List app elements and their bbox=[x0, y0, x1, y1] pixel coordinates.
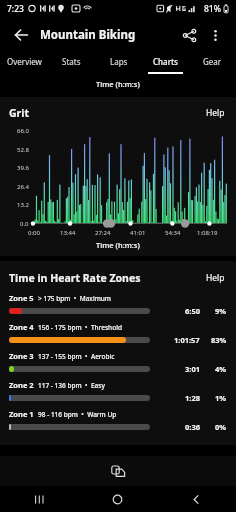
staticText: Zone 5 bbox=[9, 293, 34, 303]
button[interactable]: Share activity bbox=[105, 458, 131, 484]
staticText: 1% bbox=[215, 393, 227, 403]
staticText: Time (h:m:s) bbox=[96, 79, 140, 89]
button[interactable]: Help bbox=[204, 105, 227, 121]
staticText: 0.0 bbox=[20, 220, 29, 227]
button[interactable]: Zone 5 bbox=[9, 293, 227, 322]
staticText: 0:00 bbox=[28, 229, 40, 237]
button[interactable]: Recent apps bbox=[0, 486, 78, 512]
staticText: Charts bbox=[153, 56, 179, 67]
button[interactable]: Zone 1 bbox=[9, 409, 227, 438]
staticText: 0% bbox=[215, 422, 227, 432]
button[interactable]: Overview bbox=[0, 52, 48, 74]
button[interactable]: Back bbox=[8, 22, 34, 48]
staticText: 1:28 bbox=[185, 393, 200, 403]
staticText: Time in Heart Rate Zones bbox=[9, 271, 141, 285]
staticText: 137 - 155 bpm • Aerobic bbox=[38, 352, 115, 361]
staticText: 1:01:57 bbox=[174, 335, 200, 345]
staticText: 41:01 bbox=[130, 229, 146, 237]
staticText: 9% bbox=[215, 306, 227, 316]
button[interactable]: Zone 2 bbox=[9, 380, 227, 409]
staticText: 26.4 bbox=[17, 183, 29, 190]
staticText: 81% bbox=[204, 3, 221, 15]
staticText: 4% bbox=[215, 364, 227, 374]
staticText: Time (h:m:s) bbox=[96, 240, 140, 250]
staticText: 39.6 bbox=[17, 164, 29, 171]
button[interactable]: Gear bbox=[189, 52, 236, 74]
button[interactable]: Home bbox=[78, 486, 157, 512]
staticText: 1:08:19 bbox=[197, 229, 218, 237]
staticText: Zone 1 bbox=[9, 409, 34, 419]
staticText: 54:34 bbox=[165, 229, 181, 237]
button[interactable]: Zone 3 bbox=[9, 351, 227, 380]
staticText: 27:24 bbox=[95, 229, 111, 237]
button[interactable]: Laps bbox=[95, 52, 142, 74]
staticText: 98 - 116 bpm • Warm Up bbox=[38, 410, 117, 419]
staticText: 52.8 bbox=[17, 146, 29, 153]
staticText: 13.2 bbox=[17, 201, 29, 208]
staticText: Help bbox=[206, 107, 225, 119]
staticText: Zone 3 bbox=[9, 351, 34, 361]
staticText: Gear bbox=[203, 56, 222, 67]
staticText: Zone 4 bbox=[9, 322, 34, 332]
staticText: > 175 bpm • Maximum bbox=[38, 294, 112, 303]
staticText: Grit bbox=[9, 106, 29, 120]
button[interactable]: Back bbox=[157, 486, 236, 512]
button[interactable]: Share bbox=[176, 22, 202, 48]
button[interactable]: Charts bbox=[142, 52, 189, 74]
staticText: 6:50 bbox=[185, 306, 200, 316]
staticText: 3:01 bbox=[185, 364, 200, 374]
staticText: Laps bbox=[110, 56, 128, 67]
staticText: Zone 2 bbox=[9, 380, 34, 390]
button[interactable]: Stats bbox=[48, 52, 95, 74]
staticText: Stats bbox=[62, 56, 81, 67]
staticText: 117 - 136 bpm • Easy bbox=[38, 381, 105, 390]
staticText: Overview bbox=[7, 56, 42, 67]
staticText: 156 - 175 bpm • Threshold bbox=[38, 323, 122, 332]
staticText: Help bbox=[206, 272, 225, 284]
staticText: 13:44 bbox=[60, 229, 76, 237]
button[interactable]: More options bbox=[202, 22, 228, 48]
staticText: 66.0 bbox=[17, 127, 29, 134]
staticText: 7:23 bbox=[7, 3, 24, 15]
staticText: Mountain Biking bbox=[40, 27, 136, 43]
button[interactable]: Help bbox=[204, 270, 227, 286]
button[interactable]: Zone 4 bbox=[9, 322, 227, 351]
staticText: 83% bbox=[211, 335, 227, 345]
staticText: 0:36 bbox=[185, 422, 200, 432]
